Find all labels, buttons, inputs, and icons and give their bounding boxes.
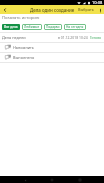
button[interactable]: Подарки	[44, 24, 62, 30]
button[interactable]: Любимые	[22, 24, 42, 30]
staticText: в 01.12.2018 10:24	[58, 35, 88, 40]
staticText: Любимые	[24, 25, 40, 29]
button[interactable]: Все дела	[2, 24, 20, 30]
staticText: 10:08	[92, 0, 103, 5]
button[interactable]: Дела недели	[0, 32, 104, 42]
staticText: Выполнено	[13, 55, 35, 60]
button[interactable]: More options	[96, 6, 104, 14]
button[interactable]: Back	[0, 5, 9, 14]
button[interactable]: Напомнить	[0, 42, 104, 52]
button[interactable]: Home	[49, 177, 55, 183]
staticText: Дела недели	[2, 35, 26, 40]
staticText: Все дела	[4, 25, 18, 29]
button[interactable]: На сегодня	[64, 24, 86, 30]
staticText: Готово	[90, 35, 102, 40]
staticText: Подарки	[46, 25, 60, 29]
button[interactable]: Выбрать	[76, 5, 96, 14]
staticText: На сегодня	[66, 25, 84, 29]
button[interactable]: Recents	[77, 177, 83, 183]
staticText: Показать историю	[2, 15, 40, 21]
button[interactable]: Выполнено	[0, 52, 104, 62]
staticText: Дела один создание	[30, 7, 75, 13]
staticText: Напомнить	[13, 45, 34, 50]
button[interactable]: Back	[22, 177, 28, 183]
button[interactable]: Показать историю	[0, 14, 104, 22]
staticText: Выбрать	[78, 7, 94, 12]
